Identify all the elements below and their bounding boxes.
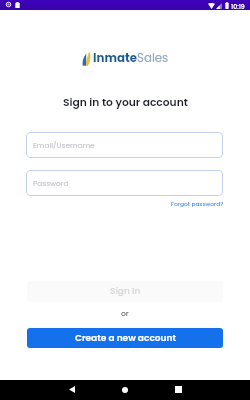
staticText: Sign in to your account [63, 95, 188, 110]
button[interactable]: Forgot password? [171, 200, 224, 208]
button[interactable]: Create a new account [27, 328, 223, 348]
button[interactable]: Home [113, 380, 137, 399]
staticText: Create a new account [75, 332, 176, 345]
staticText: Sales [137, 50, 169, 67]
staticText: 10:19 [231, 2, 245, 11]
staticText: Inmate [93, 50, 137, 67]
button[interactable]: Email/Username [26, 132, 223, 158]
button[interactable]: Password [26, 170, 223, 196]
button[interactable]: Sign In [27, 281, 223, 302]
staticText: Email/Username [33, 140, 95, 150]
staticText: Password [33, 178, 69, 188]
button[interactable]: Back [60, 380, 84, 399]
staticText: or [121, 308, 129, 319]
staticText: Forgot password? [171, 200, 224, 208]
button[interactable]: Recent apps [166, 380, 190, 399]
staticText: Sign In [110, 285, 141, 298]
